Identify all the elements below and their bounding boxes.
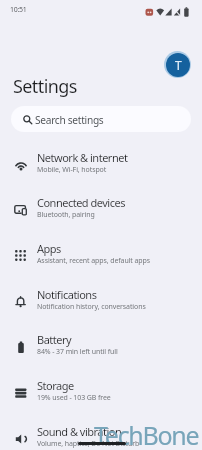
staticText: Apps <box>37 241 61 256</box>
staticText: Notification history, conversations <box>37 302 146 312</box>
staticText: Network & internet <box>37 150 128 165</box>
staticText: Volume, haptics, Do Not Disturb <box>37 439 140 449</box>
staticText: Bluetooth, pairing <box>37 210 95 220</box>
staticText: Sound & vibration <box>37 424 122 439</box>
button[interactable]: Connected devices <box>0 193 202 239</box>
button[interactable]: Sound & vibration <box>0 422 202 450</box>
staticText: T <box>175 57 182 73</box>
staticText: Connected devices <box>37 195 125 210</box>
button[interactable]: Network & internet <box>0 148 202 194</box>
staticText: Search settings <box>35 113 104 127</box>
button[interactable]: Storage <box>0 376 202 422</box>
button[interactable]: Notifications <box>0 285 202 331</box>
button[interactable]: Apps <box>0 239 202 285</box>
button[interactable]: T <box>164 51 191 78</box>
staticText: Mobile, Wi-Fi, hotspot <box>37 165 107 175</box>
staticText: 84% - 37 min left until full <box>37 347 118 357</box>
staticText: TechBone <box>94 418 199 450</box>
button[interactable]: Battery <box>0 330 202 376</box>
staticText: Assistant, recent apps, default apps <box>37 256 150 266</box>
staticText: Notifications <box>37 287 97 302</box>
staticText: Settings <box>13 74 77 99</box>
button[interactable]: Search settings <box>11 106 191 132</box>
staticText: Battery <box>37 332 72 347</box>
staticText: 19% used - 103 GB free <box>37 393 111 403</box>
staticText: Storage <box>37 378 74 393</box>
staticText: 10:51 <box>10 5 27 15</box>
